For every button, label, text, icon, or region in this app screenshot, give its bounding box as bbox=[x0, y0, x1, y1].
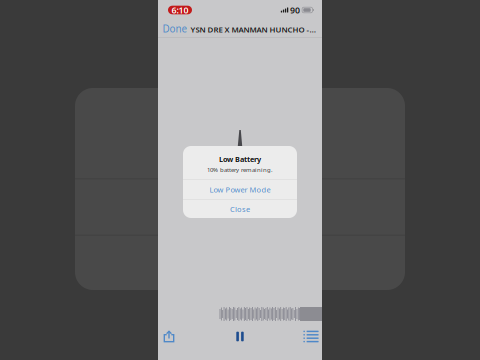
button[interactable]: Done bbox=[162, 21, 187, 36]
staticText: 10% battery remaining. bbox=[207, 166, 273, 174]
staticText: 90 bbox=[290, 4, 300, 16]
staticText: 6:10 bbox=[171, 4, 188, 16]
staticText: Close bbox=[230, 204, 250, 214]
button[interactable]: Pause bbox=[224, 325, 256, 347]
button[interactable]: Low Power Mode bbox=[183, 180, 297, 199]
staticText: YSN DRE X MANMAN HUNCHO - (5 o… bbox=[190, 24, 316, 35]
staticText: Done bbox=[162, 22, 187, 35]
staticText: Low Battery bbox=[219, 154, 261, 164]
button[interactable]: Close bbox=[183, 199, 297, 218]
staticText: Low Power Mode bbox=[209, 184, 270, 195]
button[interactable]: Recordings list bbox=[295, 325, 327, 347]
button[interactable]: Share bbox=[153, 325, 185, 347]
